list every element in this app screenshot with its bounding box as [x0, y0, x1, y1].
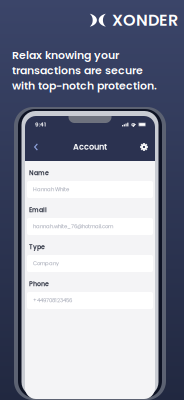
button[interactable]: Settings — [137, 140, 151, 154]
staticText: 9:41 — [35, 121, 46, 128]
staticText: Phone — [29, 280, 49, 288]
staticText: Type — [29, 243, 45, 251]
staticText: +449708123456 — [33, 297, 72, 304]
staticText: Email — [29, 206, 47, 214]
staticText: Company — [33, 260, 59, 267]
button[interactable]: Email — [27, 207, 153, 235]
staticText: Relax knowing your transactions are secu… — [12, 47, 157, 93]
button[interactable]: Type — [27, 244, 153, 272]
staticText: Hannah White — [33, 186, 69, 193]
staticText: Name — [29, 169, 49, 177]
staticText: Account — [73, 141, 107, 153]
staticText: XONDER — [112, 9, 178, 31]
staticText: hannah.white_76@hotmail.com — [33, 223, 113, 230]
button[interactable]: Back — [29, 140, 43, 154]
button[interactable]: Phone — [27, 281, 153, 309]
button[interactable]: Name — [27, 170, 153, 198]
